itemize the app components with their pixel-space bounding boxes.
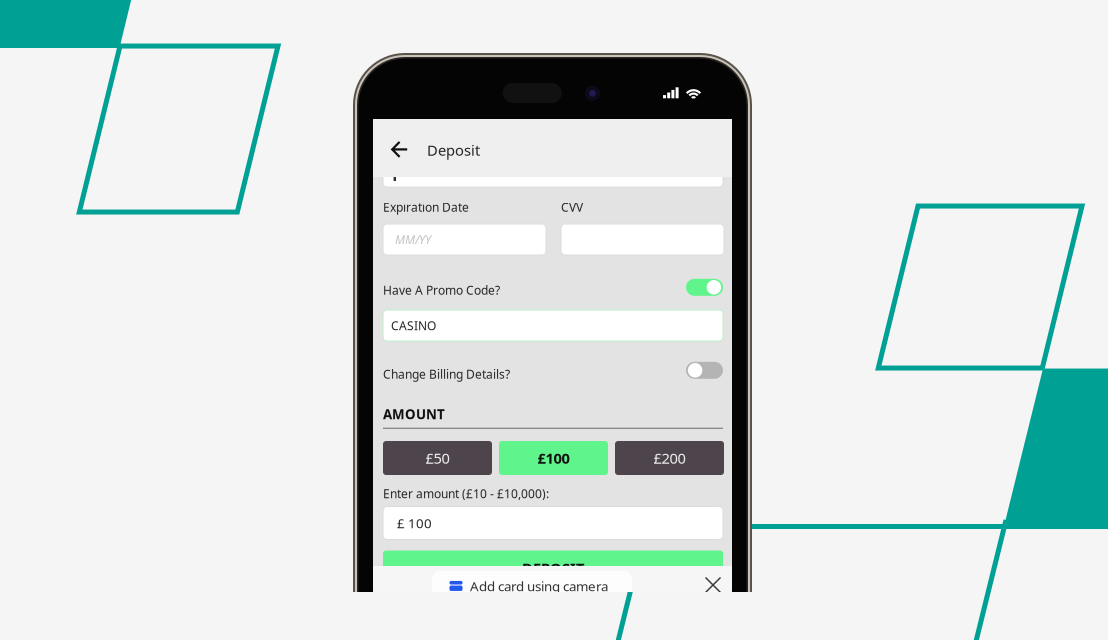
button[interactable]: £100	[499, 441, 608, 475]
button[interactable]: Back	[378, 129, 420, 171]
staticText: AMOUNT	[383, 405, 445, 423]
staticText: £200	[653, 448, 685, 468]
staticText: Change Billing Details?	[383, 366, 510, 382]
button[interactable]: Dismiss	[697, 569, 729, 601]
staticText: DEPOSIT	[522, 558, 584, 578]
staticText: CASINO	[391, 317, 436, 333]
staticText: £ 100	[397, 514, 432, 532]
button[interactable]: DEPOSIT	[383, 550, 723, 585]
staticText: Add card using camera	[470, 577, 608, 595]
button[interactable]: £50	[383, 441, 492, 475]
button[interactable]: Add card using camera	[432, 571, 632, 601]
staticText: MM/YY	[395, 231, 431, 247]
staticText: Deposit	[427, 140, 480, 160]
staticText: £50	[425, 448, 449, 468]
staticText: Enter amount (£10 - £10,000):	[383, 485, 549, 501]
staticText: £100	[537, 448, 569, 468]
staticText: CVV	[561, 199, 583, 215]
button[interactable]: £200	[615, 441, 724, 475]
button[interactable]: Switch, off	[686, 362, 723, 379]
button[interactable]: Switch, on	[686, 279, 723, 296]
staticText: Have A Promo Code?	[383, 282, 500, 298]
staticText: Expiration Date	[383, 199, 469, 215]
